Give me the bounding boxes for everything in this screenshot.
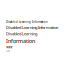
staticText: Disabled Learning — [6, 31, 37, 36]
staticText: Disabled Learning Information — [6, 20, 48, 24]
staticText: Name — [6, 50, 10, 52]
staticText: Disabled Learning Information — [6, 25, 58, 30]
staticText: Information — [6, 37, 35, 44]
staticText: Name — [6, 45, 13, 49]
